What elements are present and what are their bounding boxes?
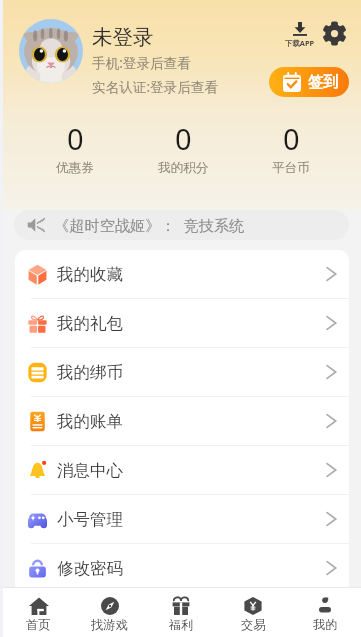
staticText: 0 — [283, 119, 300, 158]
staticText: 福利 — [169, 617, 194, 632]
button[interactable]: 下载APP — [283, 22, 317, 48]
button[interactable]: 设置 — [322, 21, 347, 46]
button[interactable]: 交易 — [217, 588, 289, 637]
button[interactable]: 我的 — [289, 588, 361, 637]
button[interactable]: 0 — [129, 119, 237, 176]
staticText: 交易 — [241, 617, 266, 632]
button[interactable]: 消息中心 — [15, 446, 349, 494]
button[interactable]: 小号管理 — [15, 495, 349, 543]
button[interactable]: 联系客服 — [15, 593, 349, 637]
staticText: 修改密码 — [57, 558, 123, 579]
staticText: 平台币 — [272, 160, 310, 176]
staticText: 下载APP — [285, 38, 315, 48]
staticText: 0 — [175, 119, 192, 158]
button[interactable]: 我的礼包 — [15, 299, 349, 347]
staticText: 0 — [67, 119, 84, 158]
staticText: 我的收藏 — [57, 264, 123, 285]
button[interactable]: 我的账单 — [15, 397, 349, 445]
button[interactable]: 首页 — [3, 588, 74, 637]
staticText: 我的绑币 — [57, 362, 123, 383]
staticText: 找游戏 — [91, 617, 128, 632]
button[interactable]: 0 — [21, 119, 129, 176]
button[interactable]: 福利 — [145, 588, 217, 637]
staticText: 首页 — [26, 617, 51, 632]
staticText: 小号管理 — [57, 509, 123, 530]
staticText: 签到 — [308, 73, 338, 92]
button[interactable]: 签到 — [269, 67, 349, 97]
button[interactable]: 头像 — [19, 19, 83, 83]
staticText: 我的积分 — [158, 160, 209, 176]
button[interactable]: 修改密码 — [15, 544, 349, 592]
button[interactable]: 《超时空战姬》： 竞技系统 — [14, 210, 349, 240]
staticText: 实名认证:登录后查看 — [92, 77, 218, 96]
button[interactable]: 0 — [237, 119, 345, 176]
staticText: 优惠券 — [56, 160, 94, 176]
staticText: 我的礼包 — [57, 313, 123, 334]
staticText: 消息中心 — [57, 460, 123, 481]
staticText: 手机:登录后查看 — [92, 53, 191, 72]
button[interactable]: 我的绑币 — [15, 348, 349, 396]
staticText: 我的账单 — [57, 411, 123, 432]
staticText: 未登录 — [92, 24, 154, 50]
staticText: 我的 — [313, 617, 338, 632]
button[interactable]: 我的收藏 — [15, 250, 349, 298]
button[interactable]: 找游戏 — [74, 588, 145, 637]
staticText: 联系客服 — [57, 607, 123, 628]
staticText: 《超时空战姬》： 竞技系统 — [54, 215, 245, 236]
